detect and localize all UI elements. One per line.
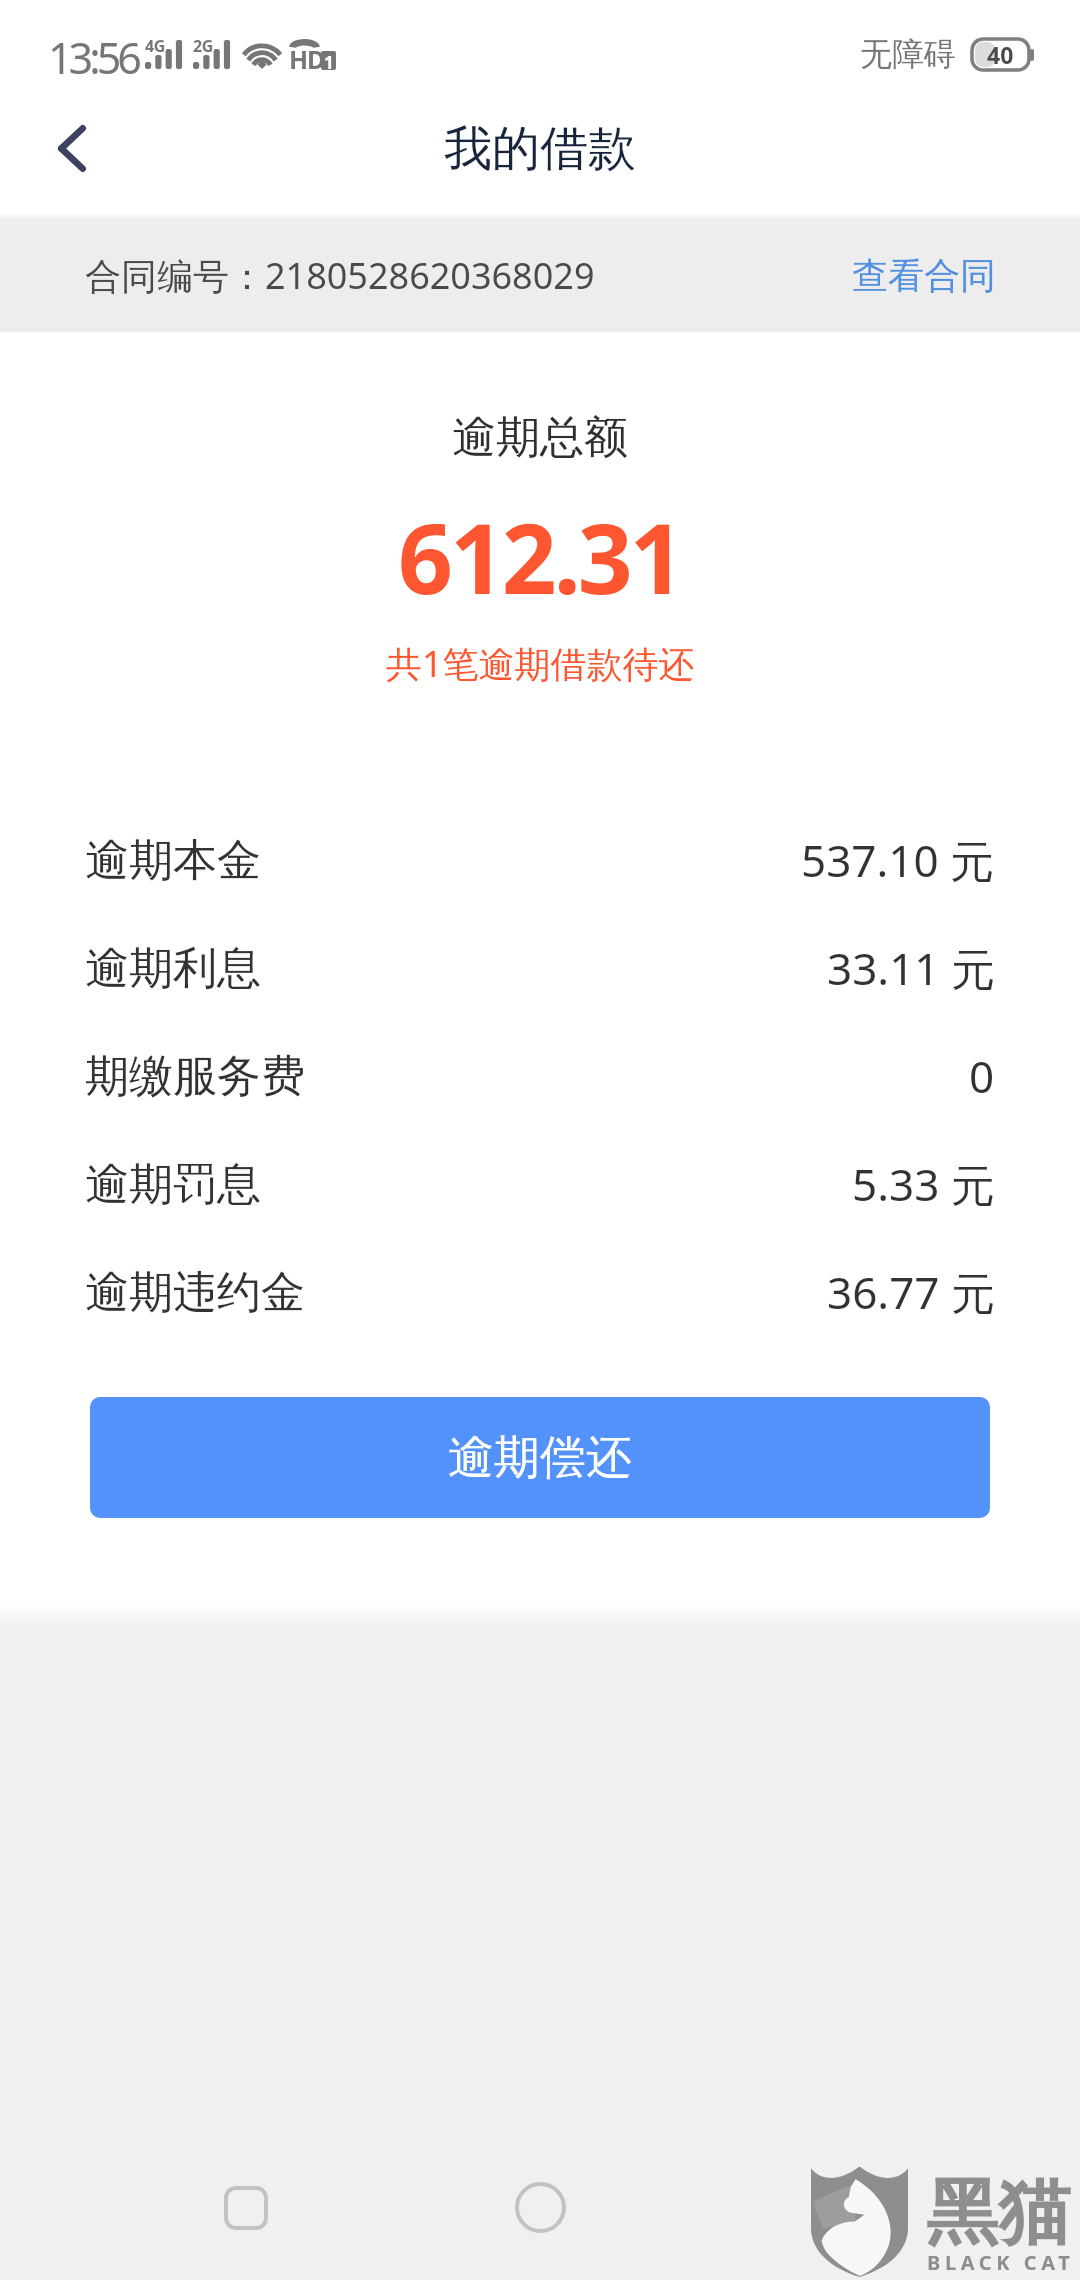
staticText: 逾期罚息 [85,1157,261,1212]
staticText: 36.77 元 [827,1262,995,1322]
staticText: 我的借款 [444,119,636,179]
staticText: 33.11 元 [827,938,995,998]
staticText: 逾期利息 [85,941,261,996]
button[interactable]: 逾期偿还 [90,1397,990,1518]
button[interactable]: Home [475,2142,605,2272]
staticText: 1 [324,51,334,70]
staticText: 逾期违约金 [85,1265,305,1320]
button[interactable]: Recents [181,2143,311,2273]
staticText: 5.33 元 [852,1154,995,1214]
staticText: 612.31 [398,491,682,622]
staticText: 13:56 [48,28,138,87]
staticText: 无障碍 [860,34,956,74]
staticText: 40 [987,39,1014,70]
staticText: HD [289,42,325,76]
staticText: 逾期总额 [452,410,628,465]
staticText: 合同编号：2180528620368029 [85,251,595,300]
staticText: 0 [969,1046,995,1106]
staticText: 2G [193,35,214,57]
staticText: 共1笔逾期借款待还 [386,639,695,688]
staticText: 逾期偿还 [448,1429,632,1487]
staticText: 查看合同 [852,253,996,298]
staticText: 4G [145,35,166,57]
staticText: 期缴服务费 [85,1049,305,1104]
button[interactable]: 查看合同 [876,219,1080,332]
staticText: 逾期本金 [85,833,261,888]
staticText: 黑猫 [926,2168,1070,2259]
staticText: BLACK CAT [927,2249,1075,2276]
button[interactable]: Back [24,100,120,196]
staticText: 537.10 元 [801,830,995,890]
